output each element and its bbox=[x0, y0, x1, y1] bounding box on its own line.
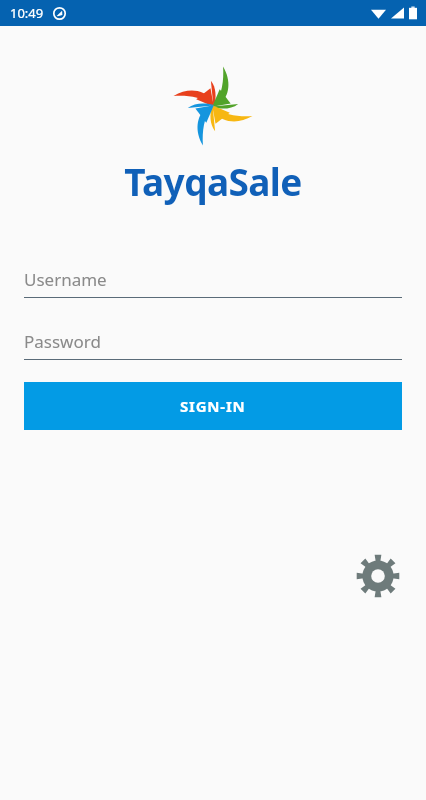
staticText: Password bbox=[24, 330, 101, 353]
staticText: 10:49 bbox=[10, 4, 44, 22]
button[interactable]: Username bbox=[24, 264, 402, 298]
button[interactable]: Password bbox=[24, 326, 402, 360]
staticText: TayqaSale bbox=[124, 156, 302, 206]
staticText: SIGN-IN bbox=[180, 396, 246, 416]
button[interactable]: Settings bbox=[354, 552, 402, 600]
staticText: Username bbox=[24, 268, 107, 291]
button[interactable]: SIGN-IN bbox=[24, 382, 402, 430]
